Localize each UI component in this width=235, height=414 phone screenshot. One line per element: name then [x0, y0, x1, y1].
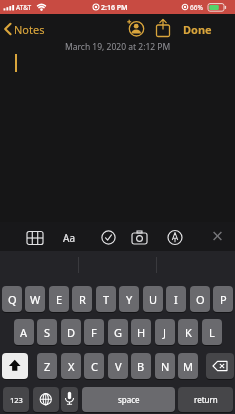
button[interactable]: Notes	[14, 22, 45, 37]
staticText: C	[91, 359, 98, 374]
button[interactable]: G	[108, 319, 128, 345]
staticText: X	[68, 359, 75, 374]
button[interactable]: I	[166, 286, 186, 312]
button[interactable]	[61, 226, 82, 247]
button[interactable]: F	[84, 319, 104, 345]
staticText: Q	[8, 292, 17, 307]
staticText: F	[91, 325, 97, 340]
staticText: P	[220, 292, 227, 307]
staticText: H	[137, 325, 146, 340]
button[interactable]	[0, 222, 235, 251]
staticText: J	[163, 325, 167, 340]
button[interactable]: P	[213, 286, 233, 312]
button[interactable]	[129, 226, 150, 247]
staticText: L	[209, 325, 215, 340]
button[interactable]: Done	[183, 22, 212, 37]
button[interactable]: U	[143, 286, 163, 312]
button[interactable]	[126, 18, 148, 40]
button[interactable]: M	[178, 353, 198, 379]
button[interactable]: J	[155, 319, 175, 345]
button[interactable]: D	[61, 319, 81, 345]
staticText: O	[196, 292, 205, 307]
button[interactable]	[61, 387, 78, 412]
button[interactable]: T	[96, 286, 116, 312]
button[interactable]: N	[155, 353, 175, 379]
button[interactable]: 123	[3, 387, 29, 412]
button[interactable]: X	[61, 353, 81, 379]
button[interactable]	[164, 226, 185, 247]
staticText: V	[115, 359, 122, 374]
button[interactable]: L	[202, 319, 222, 345]
button[interactable]	[33, 387, 59, 412]
staticText: T	[103, 292, 110, 307]
button[interactable]: return	[178, 387, 233, 412]
button[interactable]: B	[131, 353, 151, 379]
button[interactable]: A	[14, 319, 34, 345]
staticText: D	[67, 325, 76, 340]
button[interactable]: Y	[119, 286, 139, 312]
staticText: Y	[126, 292, 133, 307]
button[interactable]: E	[49, 286, 69, 312]
staticText: K	[185, 325, 192, 340]
button[interactable]	[206, 353, 234, 379]
staticText: E	[56, 292, 63, 307]
button[interactable]: V	[108, 353, 128, 379]
staticText: AT&T	[16, 3, 32, 12]
button[interactable]: C	[84, 353, 104, 379]
staticText: B	[137, 359, 145, 374]
button[interactable]: R	[72, 286, 92, 312]
button[interactable]	[153, 18, 173, 40]
button[interactable]: S	[37, 319, 57, 345]
staticText: G	[114, 325, 123, 340]
staticText: Aa	[63, 231, 75, 245]
staticText: 2:16 PM	[101, 3, 128, 13]
staticText: S	[44, 325, 51, 340]
staticText: 66%	[190, 3, 203, 12]
button[interactable]: Z	[37, 353, 57, 379]
button[interactable]: H	[131, 319, 151, 345]
staticText: Z	[44, 359, 51, 374]
staticText: 123	[10, 395, 23, 405]
button[interactable]	[2, 353, 28, 379]
staticText: A	[20, 325, 28, 340]
button[interactable]	[98, 226, 119, 247]
staticText: N	[161, 359, 170, 374]
staticText: R	[79, 292, 86, 307]
staticText: M	[183, 359, 193, 374]
staticText: W	[30, 292, 41, 307]
button[interactable]: Q	[2, 286, 22, 312]
staticText: space	[118, 394, 140, 405]
button[interactable]: K	[178, 319, 198, 345]
button[interactable]: O	[190, 286, 210, 312]
button[interactable]	[207, 226, 228, 247]
button[interactable]: W	[25, 286, 45, 312]
button[interactable]	[2, 18, 46, 40]
button[interactable]	[25, 226, 46, 247]
staticText: return	[194, 394, 218, 405]
staticText: March 19, 2020 at 2:12 PM	[65, 41, 171, 53]
staticText: I	[174, 292, 178, 307]
staticText: U	[149, 292, 158, 307]
button[interactable]: space	[82, 387, 175, 412]
